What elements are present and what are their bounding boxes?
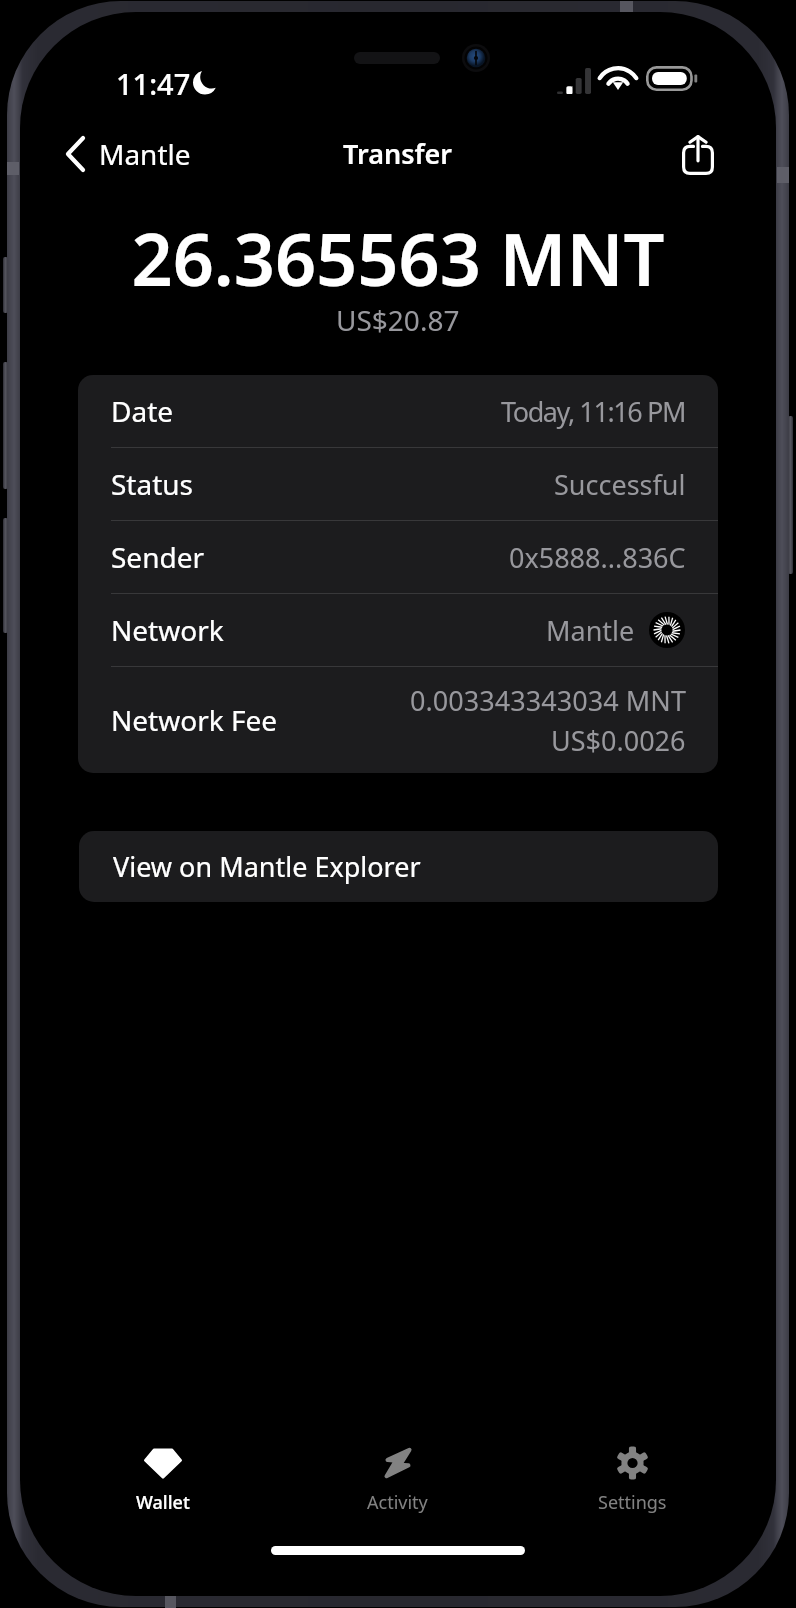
- staticText: Settings: [598, 1490, 667, 1515]
- staticText: Activity: [367, 1490, 428, 1515]
- staticText: US$20.87: [336, 301, 460, 339]
- staticText: 11:47: [116, 64, 191, 103]
- button[interactable]: Share: [676, 130, 720, 180]
- staticText: Successful: [554, 466, 686, 503]
- staticText: Network Fee: [111, 701, 278, 739]
- staticText: Sender: [111, 538, 205, 576]
- button[interactable]: Wallet: [46, 1438, 280, 1518]
- staticText: Wallet: [136, 1490, 190, 1515]
- staticText: Date: [111, 392, 174, 430]
- staticText: 26.365563 MNT: [131, 209, 665, 307]
- staticText: Network: [111, 611, 224, 649]
- staticText: 0x5888...836C: [509, 539, 686, 576]
- button[interactable]: Activity: [280, 1438, 515, 1518]
- staticText: Transfer: [343, 135, 453, 172]
- staticText: US$0.0026: [551, 722, 686, 759]
- button[interactable]: View on Mantle Explorer: [79, 831, 718, 902]
- staticText: Mantle: [546, 612, 635, 649]
- staticText: Mantle: [99, 135, 191, 173]
- staticText: Status: [111, 465, 194, 503]
- staticText: 0.003343343034 MNT: [410, 682, 686, 719]
- button[interactable]: Settings: [515, 1438, 750, 1518]
- staticText: View on Mantle Explorer: [113, 848, 421, 885]
- staticText: Today, 11:16 PM: [501, 393, 686, 430]
- button[interactable]: Mantle: [62, 131, 191, 177]
